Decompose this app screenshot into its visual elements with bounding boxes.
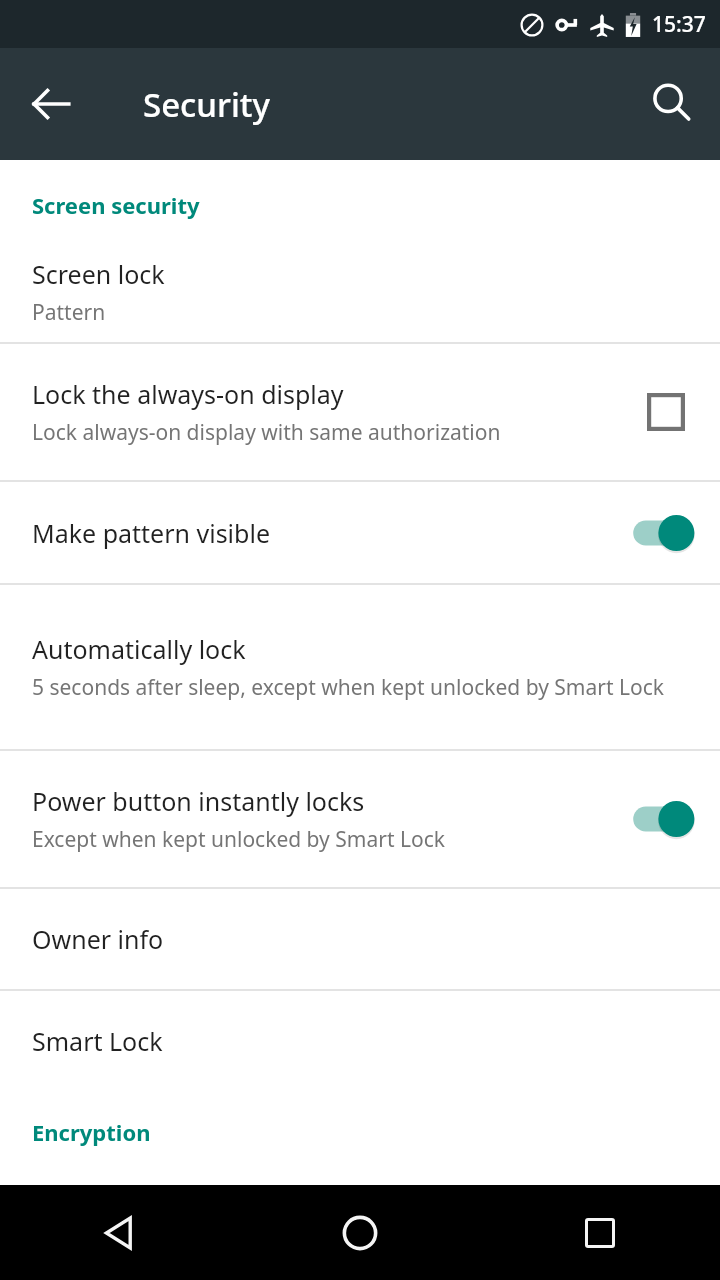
button[interactable]: Search	[644, 76, 700, 132]
button[interactable]: Smart Lock	[0, 991, 720, 1091]
staticText: Screen lock	[32, 257, 165, 291]
other: VPN	[554, 12, 580, 38]
button[interactable]: Automatically lock	[0, 585, 720, 749]
button[interactable]: Power button instantly locks	[0, 751, 720, 887]
staticText: Except when kept unlocked by Smart Lock	[32, 825, 445, 854]
other: Battery charging	[624, 12, 642, 38]
button[interactable]: Make pattern visible	[0, 482, 720, 583]
button[interactable]: Recent apps	[563, 1196, 637, 1270]
staticText: Power button instantly locks	[32, 784, 365, 818]
staticText: Automatically lock	[32, 632, 246, 666]
staticText: 15:37	[652, 10, 706, 39]
staticText: Lock the always-on display	[32, 377, 344, 411]
button[interactable]: Owner info	[0, 889, 720, 989]
staticText: Owner info	[32, 922, 164, 956]
staticText: Encryption	[32, 1117, 151, 1147]
staticText: Pattern	[32, 298, 106, 327]
button[interactable]: Back	[83, 1196, 157, 1270]
staticText: Lock always-on display with same authori…	[32, 418, 501, 447]
staticText: Screen security	[32, 190, 200, 220]
button[interactable]: Screen lock	[0, 242, 720, 342]
button[interactable]: Toggle	[630, 509, 694, 557]
staticText: Security	[143, 82, 270, 127]
other: Do not disturb	[519, 12, 545, 38]
other: Airplane mode	[589, 12, 615, 38]
button[interactable]: Toggle	[630, 795, 694, 843]
button[interactable]: Lock the always-on display checkbox	[638, 384, 694, 440]
staticText: Smart Lock	[32, 1024, 163, 1058]
button[interactable]: Home	[323, 1196, 397, 1270]
button[interactable]: Back	[24, 76, 80, 132]
button[interactable]: Lock the always-on display	[0, 344, 720, 480]
staticText: 5 seconds after sleep, except when kept …	[32, 673, 664, 702]
staticText: Make pattern visible	[32, 516, 270, 550]
